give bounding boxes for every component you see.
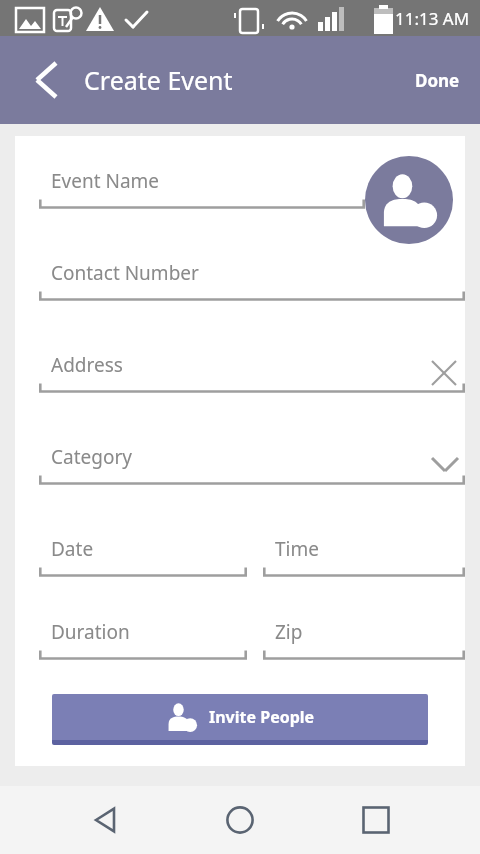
button[interactable]: Address (39, 352, 465, 393)
button[interactable]: Contact Number (39, 260, 465, 301)
staticText: Invite People (209, 706, 315, 728)
button[interactable]: Invite People (52, 694, 428, 745)
button[interactable]: Recent apps (345, 789, 407, 851)
button[interactable]: Select category (425, 444, 465, 484)
staticText: Event Name (51, 168, 160, 194)
button[interactable]: Category (39, 444, 465, 485)
staticText: Time (275, 536, 319, 562)
button[interactable]: Done (395, 57, 480, 104)
button[interactable]: Home (209, 789, 271, 851)
staticText: Contact Number (51, 260, 199, 286)
button[interactable]: Duration (39, 619, 247, 660)
button[interactable]: Date (39, 536, 247, 577)
staticText: Done (415, 69, 460, 92)
button[interactable]: Event Name (39, 168, 365, 209)
staticText: Address (51, 352, 123, 378)
staticText: Category (51, 444, 132, 470)
staticText: Zip (275, 619, 303, 645)
staticText: Date (51, 536, 94, 562)
button[interactable]: Time (263, 536, 465, 577)
staticText: 11:13 AM (395, 7, 470, 30)
button[interactable]: Back (74, 789, 136, 851)
staticText: Duration (51, 619, 130, 645)
staticText: Create Event (84, 63, 233, 97)
button[interactable]: Back (14, 52, 70, 108)
button[interactable]: Add photo (365, 156, 453, 244)
button[interactable]: Zip (263, 619, 465, 660)
button[interactable]: Clear address (423, 352, 465, 394)
